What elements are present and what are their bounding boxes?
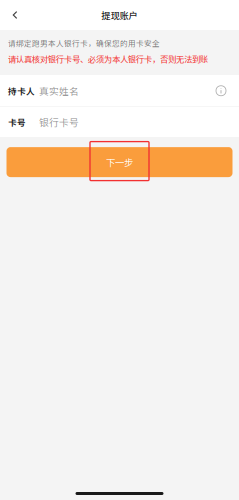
staticText: 真实姓名 bbox=[39, 84, 79, 98]
button[interactable]: 下一步 bbox=[6, 147, 232, 177]
staticText: 提现账户 bbox=[101, 8, 137, 22]
staticText: 银行卡号 bbox=[39, 115, 79, 129]
staticText: 请认真核对银行卡号、必须为本人银行卡，否则无法到账 bbox=[8, 53, 208, 65]
staticText: 持卡人 bbox=[8, 85, 35, 97]
button[interactable]: 返回 bbox=[4, 2, 26, 28]
button[interactable]: 持卡人 bbox=[0, 75, 239, 106]
staticText: 请绑定跑男本人银行卡，确保您的用卡安全 bbox=[8, 37, 160, 48]
button[interactable]: 卡号 bbox=[0, 107, 239, 137]
staticText: 下一步 bbox=[106, 155, 133, 169]
staticText: 卡号 bbox=[8, 116, 26, 128]
